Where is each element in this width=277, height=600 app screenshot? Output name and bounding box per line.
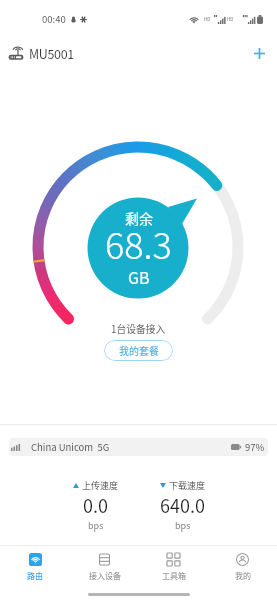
staticText: 97% (245, 440, 265, 454)
staticText: HD (204, 16, 211, 23)
button[interactable]: MU5001 (8, 44, 74, 62)
staticText: 我的套餐 (119, 343, 159, 357)
button[interactable]: 我的 (208, 553, 277, 582)
staticText: 68.3 (105, 217, 172, 269)
button[interactable]: 工具箱 (139, 553, 208, 582)
staticText: 剩余 (125, 208, 153, 228)
staticText: bps (175, 519, 191, 532)
button[interactable]: 路由 (0, 553, 70, 582)
button[interactable]: 我的套餐 (104, 340, 173, 361)
staticText: 路由 (27, 570, 43, 582)
button[interactable]: 接入设备 (70, 553, 139, 582)
staticText: China Unicom 5G (31, 440, 110, 454)
staticText: 1台设备接入 (111, 322, 166, 336)
staticText: 00:40 (42, 12, 66, 26)
staticText: 我的 (235, 570, 251, 582)
staticText: 接入设备 (89, 570, 121, 582)
staticText: GB (128, 265, 150, 288)
staticText: 下载速度 (169, 479, 206, 492)
staticText: 工具箱 (162, 570, 186, 582)
staticText: MU5001 (29, 44, 74, 62)
staticText: 640.0 (160, 492, 205, 518)
button[interactable]: Add device (247, 41, 272, 66)
staticText: 上传速度 (82, 479, 119, 492)
button[interactable]: China Unicom 5G (9, 438, 268, 456)
staticText: 0.0 (83, 492, 108, 518)
staticText: bps (88, 519, 104, 532)
staticText: HD (227, 16, 234, 23)
